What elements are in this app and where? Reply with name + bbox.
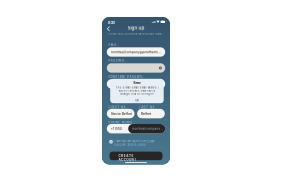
staticText: montrealcompany@anothermail.com — [111, 50, 162, 54]
staticText: Privacy — [146, 139, 154, 142]
staticText: I have read and agree to the — [114, 139, 146, 142]
staticText: Stevie Belfort — [111, 111, 131, 116]
button[interactable]: CREATE ACCOUNT — [109, 152, 162, 160]
staticText: CONFIRM PASSWORD — [108, 75, 147, 79]
staticText: and — [121, 143, 127, 146]
staticText: Error — [133, 81, 140, 85]
button[interactable]: Agree to terms and privacy policy — [109, 140, 113, 143]
staticText: EMAIL — [108, 44, 120, 47]
staticText: PHONE NUMBER — [108, 121, 137, 124]
staticText: OK — [135, 99, 139, 102]
button[interactable]: OK — [110, 98, 164, 103]
staticText: Sign up — [127, 25, 144, 31]
button[interactable]: Privacy — [146, 139, 154, 142]
staticText: Terms of Service — [127, 143, 145, 146]
staticText: Policy — [114, 143, 121, 146]
staticText: The E-mail Email Email existed / account… — [115, 86, 158, 95]
button[interactable]: Policy — [114, 143, 121, 146]
button[interactable]: Terms of Service — [127, 143, 145, 146]
staticText: Create your personal MedicShare frame ac… — [108, 32, 164, 35]
staticText: CREATE ACCOUNT — [118, 154, 154, 158]
staticText: LAST NAME — [139, 106, 160, 109]
staticText: PASSWORD — [108, 59, 128, 62]
button[interactable]: Back — [105, 25, 113, 33]
staticText: montrealcompany@anothermail.com — [132, 127, 165, 130]
staticText: FIRST NAME — [108, 106, 131, 109]
staticText: +1 (514) — [111, 127, 122, 131]
staticText: Belfort — [141, 111, 151, 116]
staticText: 9:30 — [108, 20, 116, 25]
